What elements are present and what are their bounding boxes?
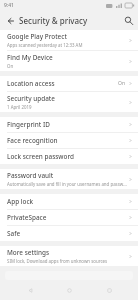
- staticText: Face recognition: [7, 136, 58, 145]
- staticText: Apps scanned yesterday at 12:33 AM: [7, 42, 83, 48]
- button[interactable]: Fingerprint ID: [0, 117, 138, 132]
- button[interactable]: Find My Device: [0, 51, 138, 71]
- staticText: SIM lock, Download apps from unknown sou…: [7, 258, 108, 264]
- button[interactable]: Face recognition: [0, 133, 138, 148]
- staticText: Security update: [7, 94, 55, 103]
- button[interactable]: Password vault: [0, 169, 138, 189]
- staticText: Location access: [7, 79, 55, 88]
- staticText: Security & privacy: [19, 15, 88, 26]
- staticText: Google Play Protect: [7, 32, 67, 41]
- staticText: 9:41: [4, 2, 14, 9]
- staticText: Fingerprint ID: [7, 120, 50, 129]
- button[interactable]: PrivateSpace: [0, 210, 138, 225]
- staticText: More settings: [7, 248, 50, 257]
- staticText: On: [118, 80, 125, 87]
- staticText: PrivateSpace: [7, 213, 47, 222]
- staticText: Password vault: [7, 171, 54, 180]
- button[interactable]: Safe: [0, 226, 138, 241]
- staticText: Automatically save and fill in your user…: [7, 181, 128, 187]
- staticText: Find My Device: [7, 53, 53, 62]
- button[interactable]: App lock: [0, 194, 138, 209]
- button[interactable]: More settings: [0, 246, 138, 266]
- staticText: On: [7, 63, 14, 69]
- button[interactable]: Search: [119, 11, 138, 30]
- staticText: Lock screen password: [7, 152, 74, 161]
- button[interactable]: Security update: [0, 92, 138, 112]
- staticText: App lock: [7, 197, 34, 206]
- button[interactable]: Recent apps: [99, 280, 119, 300]
- button[interactable]: Lock screen password: [0, 149, 138, 164]
- button[interactable]: Google Play Protect: [0, 30, 138, 50]
- button[interactable]: Location access: [0, 76, 138, 91]
- button[interactable]: Back: [0, 11, 19, 30]
- staticText: 1 April 2019: [7, 104, 32, 110]
- staticText: Safe: [7, 229, 21, 238]
